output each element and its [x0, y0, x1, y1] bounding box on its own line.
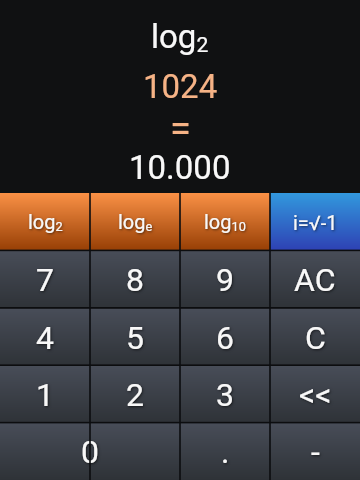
button[interactable]: Clear [270, 309, 360, 366]
button[interactable]: 0 [0, 423, 180, 480]
staticText: 2 [126, 376, 144, 414]
button[interactable]: decimal point [180, 423, 270, 480]
staticText: log2 [151, 17, 209, 58]
staticText: 5 [126, 319, 144, 357]
staticText: - [311, 433, 320, 471]
staticText: << [299, 376, 332, 414]
staticText: 0 [81, 433, 99, 471]
button[interactable]: 2 [90, 366, 180, 423]
button[interactable]: minus [270, 423, 360, 480]
staticText: 6 [216, 319, 234, 357]
staticText: 4 [36, 319, 54, 357]
staticText: 8 [126, 261, 144, 299]
button[interactable]: natural log [90, 193, 180, 251]
button[interactable]: 7 [0, 251, 90, 309]
staticText: log10 [204, 210, 246, 235]
staticText: . [221, 433, 230, 471]
button[interactable]: 3 [180, 366, 270, 423]
button[interactable]: 8 [90, 251, 180, 309]
button[interactable]: imaginary unit [270, 193, 360, 251]
button[interactable]: 5 [90, 309, 180, 366]
staticText: 10.000 [129, 148, 231, 187]
staticText: loge [118, 210, 153, 235]
button[interactable]: Backspace [270, 366, 360, 423]
button[interactable]: 1 [0, 366, 90, 423]
staticText: 9 [216, 261, 234, 299]
button[interactable]: All clear [270, 251, 360, 309]
staticText: i=√-1 [293, 211, 338, 234]
button[interactable]: log base 10 [180, 193, 270, 251]
staticText: 7 [36, 261, 54, 299]
button[interactable]: 9 [180, 251, 270, 309]
button[interactable]: 4 [0, 309, 90, 366]
staticText: AC [294, 261, 336, 299]
staticText: = [170, 107, 191, 152]
staticText: 1 [36, 376, 54, 414]
button[interactable]: log base 2 [0, 193, 90, 251]
button[interactable]: 6 [180, 309, 270, 366]
staticText: 3 [216, 376, 234, 414]
staticText: 1024 [143, 67, 218, 106]
staticText: C [305, 319, 326, 357]
staticText: log2 [28, 210, 63, 235]
